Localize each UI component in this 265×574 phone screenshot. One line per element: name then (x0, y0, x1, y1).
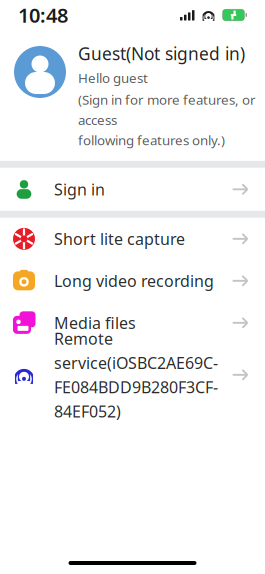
staticText: (Sign in for more features, or access fo… (78, 91, 256, 149)
staticText: 10:48 (18, 2, 68, 28)
staticText: Media files (54, 312, 136, 333)
button[interactable]: Sign in (0, 168, 265, 211)
staticText: Hello guest (78, 69, 148, 87)
staticText: Sign in (54, 179, 105, 200)
staticText: Remote service(iOSBC2AE69CFE084BDD9B280F… (54, 328, 218, 422)
button[interactable]: Long video recording (0, 260, 265, 302)
staticText: Short lite capture (54, 228, 185, 249)
button[interactable]: Media files (0, 302, 265, 344)
staticText: Guest(Not signed in) (78, 42, 245, 65)
button[interactable]: Short lite capture (0, 218, 265, 260)
staticText: Long video recording (54, 270, 214, 291)
button[interactable]: Remote service(iOSBC2AE69CFE084BDD9B280F… (0, 344, 265, 406)
